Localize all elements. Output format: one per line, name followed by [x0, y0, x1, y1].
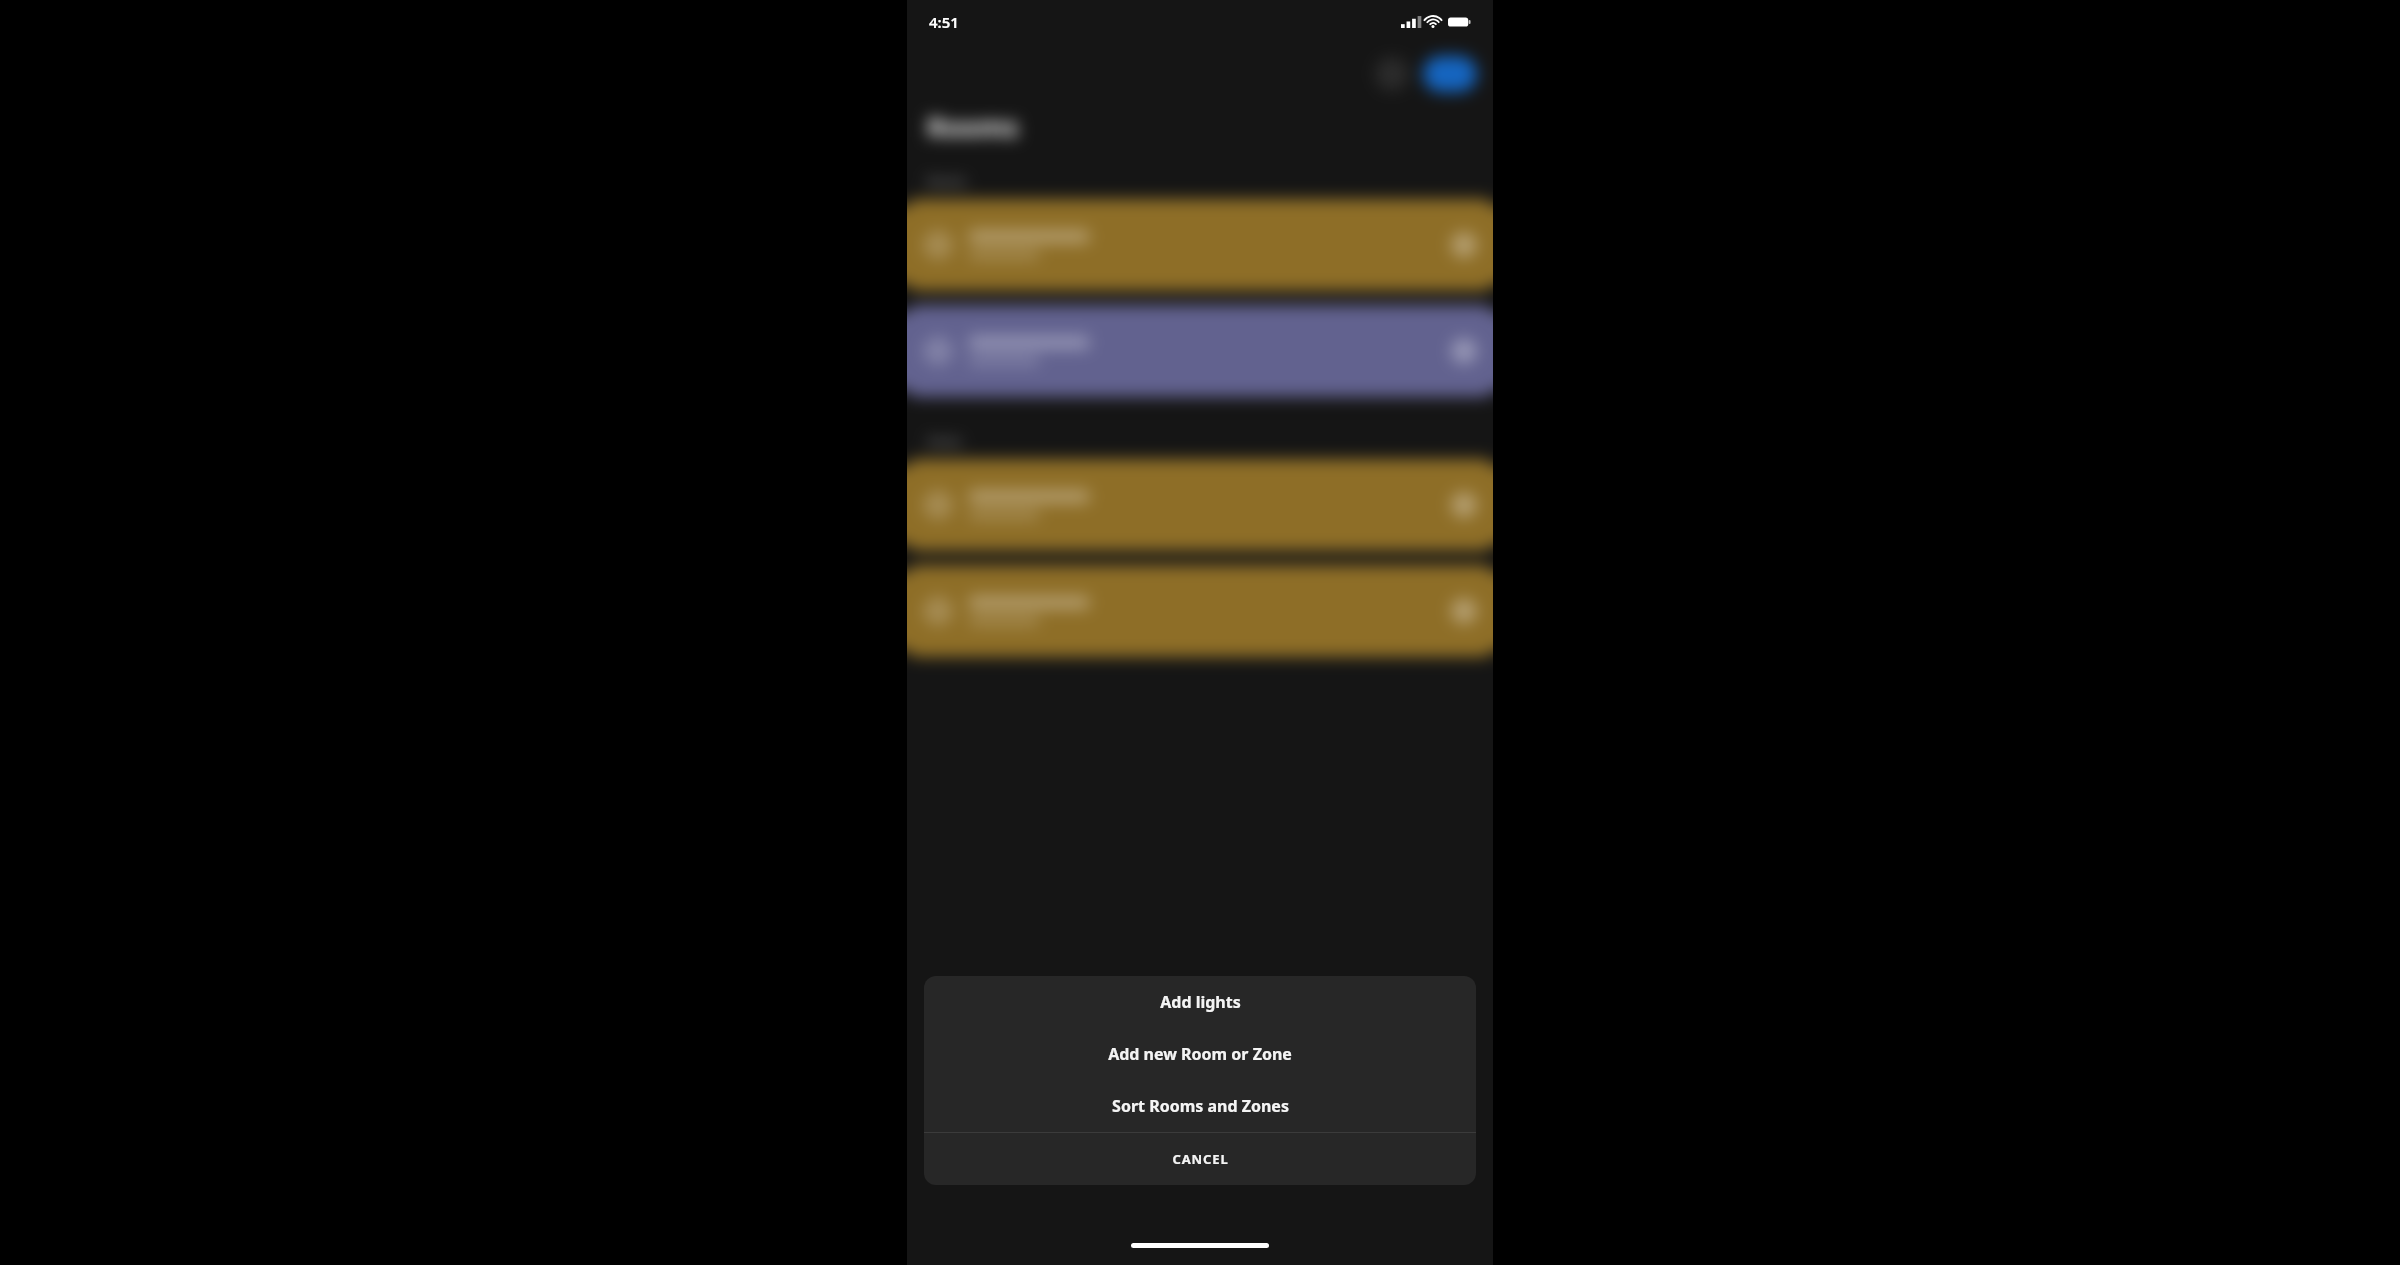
- button[interactable]: Add lights: [924, 976, 1476, 1028]
- button[interactable]: Add new Room or Zone: [924, 1028, 1476, 1080]
- staticText: 4:51: [929, 12, 959, 32]
- button[interactable]: [907, 199, 1493, 291]
- staticText: Add lights: [1160, 991, 1241, 1013]
- staticText: Zones: [927, 433, 962, 449]
- button[interactable]: [907, 565, 1493, 657]
- staticText: Add new Room or Zone: [1108, 1043, 1292, 1065]
- button[interactable]: [907, 459, 1493, 551]
- staticText: Rooms: [927, 173, 967, 189]
- button[interactable]: Sort Rooms and Zones: [924, 1080, 1476, 1132]
- staticText: CANCEL: [1172, 1150, 1229, 1168]
- button[interactable]: [907, 305, 1493, 397]
- button[interactable]: CANCEL: [924, 1133, 1476, 1185]
- staticText: Rooms: [927, 108, 1019, 145]
- staticText: Sort Rooms and Zones: [1112, 1095, 1289, 1117]
